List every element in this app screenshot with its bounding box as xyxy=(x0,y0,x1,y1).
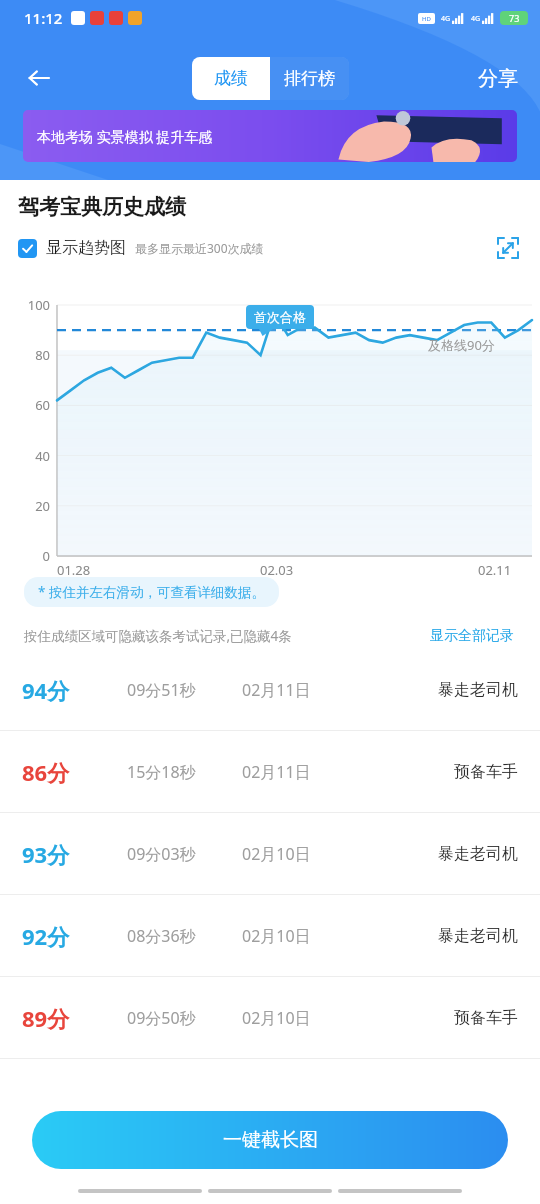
staticText: 89分 xyxy=(22,1003,127,1033)
staticText: 预备车手 xyxy=(454,1008,518,1028)
staticText: 15分18秒 xyxy=(127,761,242,783)
button[interactable]: 显示全部记录 xyxy=(426,623,518,649)
staticText: 分享 xyxy=(478,66,518,91)
staticText: 排行榜 xyxy=(284,68,335,89)
staticText: 显示全部记录 xyxy=(430,627,514,645)
staticText: 73 xyxy=(509,12,520,24)
staticText: 40 xyxy=(4,447,50,465)
button[interactable]: 分享 xyxy=(472,60,524,97)
button[interactable]: Fullscreen xyxy=(492,232,524,264)
staticText: 首次合格 xyxy=(254,309,306,325)
button[interactable]: 94分 xyxy=(0,649,540,731)
staticText: 09分50秒 xyxy=(127,1007,242,1029)
staticText: 及格线90分 xyxy=(428,336,495,354)
button[interactable]: 86分 xyxy=(0,731,540,813)
staticText: 80 xyxy=(4,346,50,364)
button[interactable]: 本地考场 实景模拟 提升车感 xyxy=(23,110,517,162)
staticText: 93分 xyxy=(22,839,127,869)
staticText: 成绩 xyxy=(214,68,248,89)
staticText: 02月10日 xyxy=(242,843,352,865)
staticText: 一键截长图 xyxy=(223,1128,318,1152)
staticText: 60 xyxy=(4,396,50,414)
staticText: 最多显示最近300次成绩 xyxy=(135,240,264,256)
staticText: 11:12 xyxy=(24,8,63,28)
staticText: 02.11 xyxy=(478,561,512,579)
staticText: 4G xyxy=(441,14,451,24)
staticText: 92分 xyxy=(22,921,127,951)
staticText: 驾考宝典历史成绩 xyxy=(18,194,186,220)
button[interactable]: 92分 xyxy=(0,895,540,977)
staticText: 09分03秒 xyxy=(127,843,242,865)
button[interactable]: 89分 xyxy=(0,977,540,1059)
staticText: 02月10日 xyxy=(242,925,352,947)
staticText: 02月11日 xyxy=(242,679,352,701)
staticText: 02月10日 xyxy=(242,1007,352,1029)
staticText: 08分36秒 xyxy=(127,925,242,947)
staticText: 预备车手 xyxy=(454,762,518,782)
button[interactable]: * 按住并左右滑动，可查看详细数据。 xyxy=(24,577,279,607)
button[interactable]: 排行榜 xyxy=(270,57,349,100)
button[interactable]: Back xyxy=(14,54,62,102)
staticText: 02月11日 xyxy=(242,761,352,783)
staticText: 09分51秒 xyxy=(127,679,242,701)
staticText: 暴走老司机 xyxy=(438,926,518,946)
button[interactable]: 显示趋势图 xyxy=(18,238,126,258)
staticText: 86分 xyxy=(22,757,127,787)
staticText: 100 xyxy=(4,296,50,314)
staticText: HD xyxy=(422,15,431,23)
staticText: 本地考场 实景模拟 提升车感 xyxy=(37,127,213,146)
staticText: 暴走老司机 xyxy=(438,844,518,864)
staticText: 显示趋势图 xyxy=(46,238,126,258)
staticText: 0 xyxy=(4,547,50,565)
staticText: 01.28 xyxy=(57,561,91,579)
staticText: 20 xyxy=(4,497,50,515)
button[interactable]: 成绩 xyxy=(192,57,270,100)
button[interactable]: 一键截长图 xyxy=(32,1111,508,1169)
staticText: 暴走老司机 xyxy=(438,680,518,700)
staticText: * 按住并左右滑动，可查看详细数据。 xyxy=(38,583,265,601)
staticText: 94分 xyxy=(22,675,127,705)
staticText: 02.03 xyxy=(260,561,294,579)
staticText: 按住成绩区域可隐藏该条考试记录,已隐藏4条 xyxy=(24,627,292,645)
button[interactable]: 93分 xyxy=(0,813,540,895)
staticText: 4G xyxy=(471,14,481,24)
